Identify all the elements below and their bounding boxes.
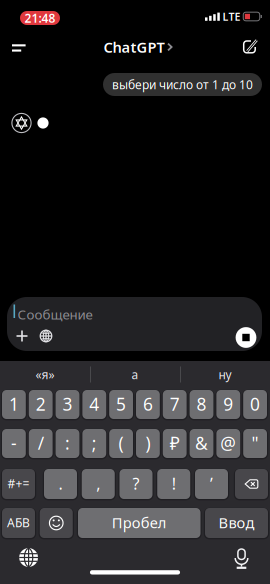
button[interactable]: ’ [194, 468, 229, 500]
staticText: Сообщение [17, 305, 92, 323]
staticText: . [58, 473, 62, 494]
staticText: Пробел [112, 513, 167, 532]
button[interactable] [12, 326, 32, 346]
staticText: " [252, 431, 259, 454]
staticText: 21:48 [24, 10, 55, 26]
button[interactable]: / [28, 428, 54, 459]
button[interactable]: 0 [242, 389, 268, 420]
button[interactable]: Пробел [77, 507, 202, 539]
button[interactable] [17, 545, 41, 569]
staticText: ( [119, 431, 124, 454]
button[interactable]: а [91, 362, 179, 386]
button[interactable]: #+= [1, 468, 36, 500]
button[interactable] [5, 36, 33, 60]
staticText: 3 [62, 392, 72, 415]
staticText: ’ [210, 473, 213, 494]
staticText: 1 [9, 392, 19, 415]
button[interactable] [234, 468, 269, 500]
staticText: ChatGPT [103, 37, 164, 57]
button[interactable]: & [188, 428, 215, 459]
staticText: LTE [222, 9, 240, 24]
button[interactable]: 2 [28, 389, 54, 420]
button[interactable]: 5 [108, 389, 134, 420]
button[interactable]: 21:48 [20, 11, 60, 25]
button[interactable]: - [1, 428, 27, 459]
button[interactable]: «я» [1, 362, 89, 386]
staticText: 7 [170, 392, 180, 415]
button[interactable]: 3 [54, 389, 81, 420]
button[interactable]: . [43, 468, 78, 500]
button[interactable]: Ввод [204, 507, 269, 539]
staticText: : [65, 431, 70, 454]
button[interactable]: ) [135, 428, 161, 459]
button[interactable]: , [80, 468, 116, 500]
button[interactable]: АБВ [1, 507, 36, 539]
button[interactable]: 6 [135, 389, 161, 420]
button[interactable]: ну [181, 362, 269, 386]
staticText: выбери число от 1 до 10 [112, 76, 253, 92]
button[interactable] [234, 325, 258, 349]
staticText: 8 [196, 392, 206, 415]
button[interactable]: " [242, 428, 268, 459]
staticText: @ [220, 431, 236, 454]
button[interactable] [36, 326, 56, 346]
button[interactable]: ChatGPT [96, 35, 180, 59]
staticText: а [131, 366, 138, 382]
staticText: / [38, 431, 44, 454]
staticText: & [195, 431, 208, 454]
button[interactable]: ! [156, 468, 191, 500]
button[interactable] [38, 507, 74, 539]
button[interactable]: ( [108, 428, 134, 459]
staticText: АБВ [7, 514, 30, 530]
button[interactable]: 1 [1, 389, 27, 420]
staticText: ) [145, 431, 150, 454]
staticText: 6 [143, 392, 153, 415]
button[interactable]: ₽ [162, 428, 188, 459]
staticText: , [96, 473, 100, 494]
button[interactable]: : [54, 428, 81, 459]
staticText: «я» [35, 366, 54, 382]
staticText: 0 [250, 392, 260, 415]
staticText: Ввод [218, 513, 254, 532]
button[interactable]: 8 [188, 389, 215, 420]
staticText: ₽ [170, 431, 180, 454]
staticText: ; [92, 431, 97, 454]
button[interactable]: ? [118, 468, 154, 500]
button[interactable]: 7 [162, 389, 188, 420]
staticText: 4 [89, 392, 99, 415]
button[interactable] [7, 297, 262, 351]
button[interactable]: @ [215, 428, 241, 459]
staticText: ! [172, 473, 176, 494]
button[interactable]: 4 [81, 389, 107, 420]
staticText: 2 [36, 392, 46, 415]
button[interactable] [237, 34, 263, 60]
button[interactable]: 9 [215, 389, 241, 420]
button[interactable]: ; [81, 428, 107, 459]
staticText: #+= [7, 475, 29, 491]
staticText: ну [218, 366, 231, 382]
staticText: 9 [223, 392, 233, 415]
staticText: ? [132, 473, 139, 494]
staticText: - [11, 431, 17, 454]
staticText: 5 [116, 392, 126, 415]
button[interactable] [229, 547, 253, 571]
